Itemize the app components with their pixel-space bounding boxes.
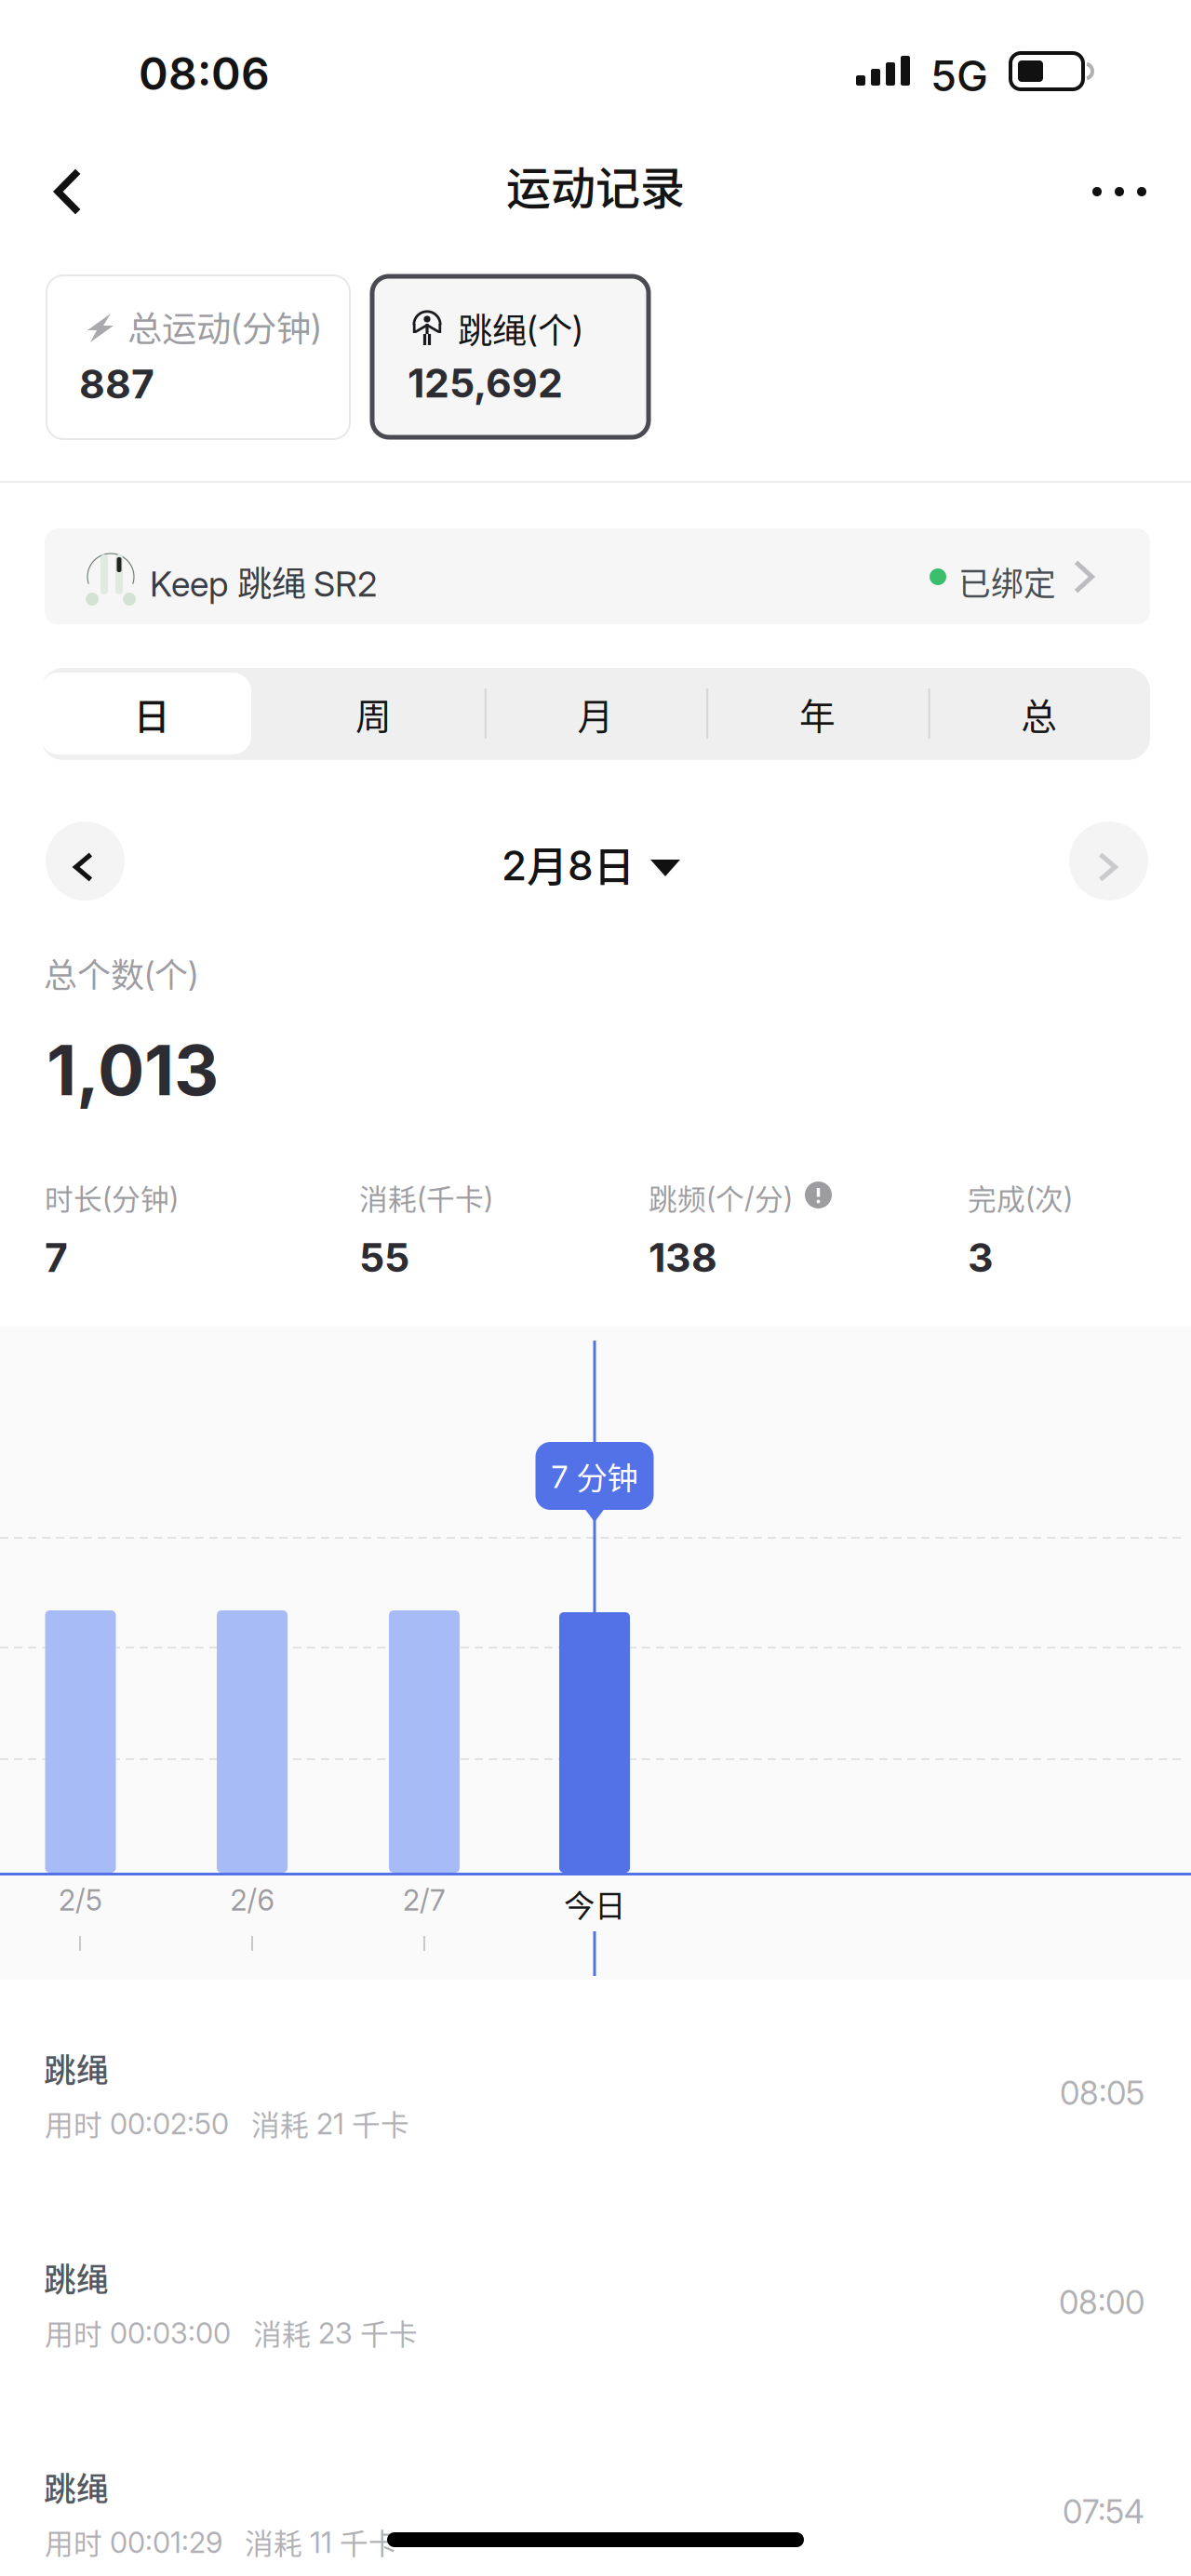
staticText: 2/7 [403,1883,446,1917]
button[interactable]: Back [18,141,118,242]
staticText: 跳绳 [44,2463,109,2510]
staticText: 125,692 [408,359,563,407]
button[interactable]: 跳绳 [0,2189,1191,2398]
staticText: 完成(次) [968,1177,1073,1218]
staticText: 用时 00:01:29 消耗 11 千卡 [45,2521,397,2562]
staticText: 1,013 [47,1028,219,1112]
staticText: 年 [799,688,835,740]
button[interactable]: 年 [706,668,928,760]
staticText: 消耗(千卡) [359,1177,493,1218]
staticText: 跳绳 [44,2045,109,2091]
button[interactable]: 周 [263,668,485,760]
staticText: 总 [1021,688,1057,740]
staticText: 用时 00:03:00 消耗 23 千卡 [45,2312,418,2353]
staticText: 总运动(分钟) [127,301,322,352]
staticText: 08:06 [139,47,270,101]
button[interactable]: Next day [1069,821,1148,901]
button[interactable]: 2月8日 [502,820,699,900]
staticText: 今日 [564,1881,625,1926]
staticText: 55 [359,1234,409,1282]
staticText: 用时 00:02:50 消耗 21 千卡 [45,2102,409,2144]
staticText: 跳绳(个) [458,303,583,354]
staticText: 08:00 [1059,2283,1144,2322]
staticText: 时长(分钟) [45,1177,179,1218]
staticText: 887 [79,360,154,408]
staticText: 月 [577,688,614,740]
staticText: Keep 跳绳 SR2 [150,556,377,607]
staticText: 日 [134,688,170,740]
staticText: 07:54 [1063,2492,1144,2531]
staticText: 跳绳 [44,2254,109,2301]
button[interactable]: Keep 跳绳 SR2 [45,528,1150,624]
staticText: 7 分钟 [551,1454,638,1498]
button[interactable]: More options [1068,140,1171,243]
staticText: 2月8日 [502,834,635,894]
staticText: 3 [968,1234,994,1282]
button[interactable]: 跳绳 [0,1980,1191,2189]
staticText: 周 [356,688,392,740]
button[interactable]: 总 [928,668,1150,760]
staticText: 已绑定 [958,558,1056,605]
button[interactable]: 总运动(分钟) [47,275,350,439]
staticText: 5G [930,50,988,101]
staticText: 7 [45,1234,68,1282]
button[interactable]: 跳绳 [0,2398,1191,2576]
staticText: 总个数(个) [44,949,198,997]
button[interactable]: 跳绳(个) [372,276,649,437]
staticText: 2/5 [59,1883,102,1917]
button[interactable]: 月 [485,668,706,760]
button[interactable]: 日 [41,668,263,760]
staticText: 2/6 [230,1883,274,1917]
staticText: 跳频(个/分) [649,1177,793,1218]
staticText: 运动记录 [506,153,685,217]
staticText: 138 [649,1234,717,1282]
button[interactable]: Previous day [46,821,125,901]
staticText: 08:05 [1060,2074,1144,2113]
